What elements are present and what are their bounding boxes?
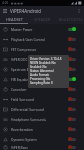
staticText: Enabled: No: [30, 65, 47, 69]
button[interactable]: BLUETOOTH: [56, 15, 84, 24]
staticText: ViPER DDC: [11, 57, 68, 61]
button[interactable]: ViPER Bass: [0, 144, 84, 150]
button[interactable]: ViPER DDC: [0, 54, 84, 64]
button[interactable]: FIR Equalizer: [0, 74, 84, 84]
staticText: Processing: No: [30, 77, 51, 81]
staticText: HEADSET: [6, 17, 23, 22]
staticText: ViPER4Android: [10, 8, 42, 14]
staticText: Convolver: [11, 87, 68, 91]
button[interactable]: SPEAKER: [28, 15, 56, 24]
staticText: NEON Enabled: No: [30, 61, 56, 65]
staticText: Dynamic System: [11, 137, 68, 141]
staticText: Reverberation: [11, 127, 68, 131]
staticText: Driver Version: 3.10.4.8: [30, 57, 62, 61]
button[interactable]: Reverberation: [0, 124, 84, 134]
button[interactable]: FET Compressor: [0, 44, 84, 54]
staticText: Master Power: [11, 27, 68, 31]
button[interactable]: Field Surround: [0, 94, 84, 104]
staticText: FET Compressor: [11, 47, 68, 51]
staticText: Audio Format: unsupported: [30, 73, 67, 77]
staticText: Differential Surround: [11, 107, 68, 111]
staticText: Sampling Rate: 0: [30, 81, 53, 85]
staticText: Playback Gain Control: [11, 37, 68, 41]
staticText: SPEAKER: [34, 17, 51, 22]
staticText: Status: Abnormal: [30, 69, 54, 73]
button[interactable]: HEADSET: [0, 15, 28, 24]
button[interactable]: Playback Gain Control: [0, 34, 84, 44]
staticText: Field Surround: [11, 97, 68, 101]
button[interactable]: Differential Surround: [0, 104, 84, 114]
button[interactable]: Spectrum Extension: [0, 64, 84, 74]
button[interactable]: Convolver: [0, 84, 84, 94]
staticText: BLUETOOTH: [59, 17, 82, 22]
button[interactable]: Dynamic System: [0, 134, 84, 144]
button[interactable]: More options: [74, 6, 84, 15]
button[interactable]: Open navigation menu: [0, 6, 9, 15]
button[interactable]: Master Power: [0, 24, 84, 34]
staticText: FIR Equalizer: [11, 77, 68, 81]
staticText: ViPER Bass: [11, 145, 68, 149]
button[interactable]: Headphone Surround+: [0, 114, 84, 124]
staticText: 4:26: [2, 1, 9, 5]
staticText: Headphone Surround+: [11, 117, 68, 121]
staticText: Spectrum Extension: [11, 67, 68, 71]
